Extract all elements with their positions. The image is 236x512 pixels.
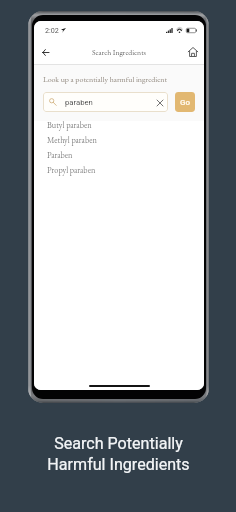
button[interactable]: Propyl paraben — [34, 163, 204, 178]
button[interactable]: Back — [36, 43, 54, 61]
button[interactable]: Butyl paraben — [34, 118, 204, 133]
button[interactable]: paraben — [43, 92, 168, 112]
button[interactable]: Home — [184, 43, 202, 61]
staticText: Search Ingredients — [92, 47, 147, 57]
staticText: Look up a potentially harmful ingredient — [43, 74, 167, 84]
button[interactable]: Methyl paraben — [34, 133, 204, 148]
staticText: Harmful Ingredients — [47, 455, 190, 474]
staticText: Paraben — [47, 150, 73, 161]
button[interactable]: Go — [175, 92, 195, 112]
button[interactable]: Clear search — [155, 98, 164, 107]
staticText: Butyl paraben — [47, 120, 92, 131]
staticText: paraben — [65, 98, 93, 107]
staticText: Go — [180, 98, 190, 107]
staticText: Search Potentially — [54, 434, 183, 453]
button[interactable]: Paraben — [34, 148, 204, 163]
staticText: Methyl paraben — [47, 135, 97, 146]
staticText: Propyl paraben — [47, 165, 96, 176]
staticText: 2:02 — [45, 26, 59, 34]
